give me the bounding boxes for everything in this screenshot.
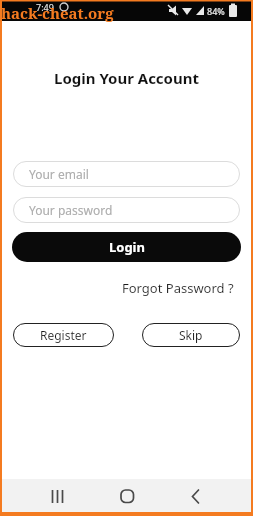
button[interactable]: Register bbox=[13, 323, 114, 347]
staticText: Your password bbox=[29, 202, 113, 218]
staticText: Forgot Password ? bbox=[122, 279, 234, 297]
button[interactable]: Login bbox=[12, 232, 241, 262]
staticText: 7:49 bbox=[36, 1, 54, 13]
staticText: hack-cheat.org bbox=[1, 3, 114, 23]
staticText: Register bbox=[40, 327, 87, 343]
staticText: Your email bbox=[29, 166, 89, 182]
button[interactable]: Skip bbox=[142, 323, 240, 347]
button[interactable]: Forgot Password ? bbox=[104, 278, 234, 298]
button[interactable] bbox=[179, 481, 209, 511]
staticText: 84% bbox=[207, 5, 225, 17]
staticText: Skip bbox=[179, 327, 203, 343]
staticText: Login bbox=[109, 238, 145, 256]
staticText: Login Your Account bbox=[54, 68, 199, 88]
button[interactable]: Your password bbox=[13, 197, 240, 223]
button[interactable] bbox=[44, 481, 74, 511]
button[interactable]: Your email bbox=[13, 161, 240, 187]
button[interactable] bbox=[112, 481, 142, 511]
